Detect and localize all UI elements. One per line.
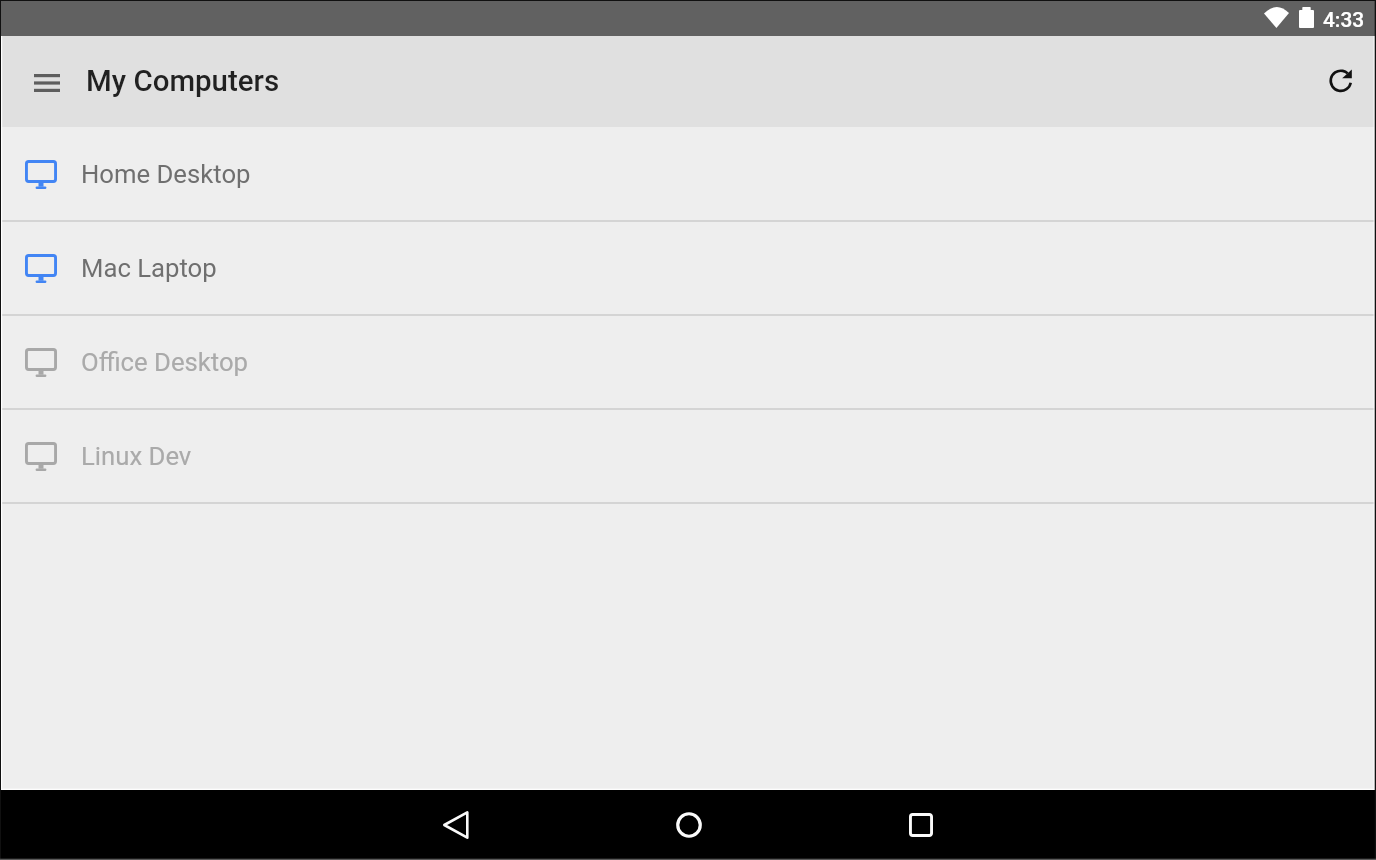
button[interactable]: Mac Laptop (0, 221, 1376, 315)
staticText: Linux Dev (81, 441, 192, 471)
button[interactable]: Recent apps (873, 790, 969, 860)
staticText: Home Desktop (81, 159, 251, 189)
button[interactable]: Office Desktop (0, 315, 1376, 409)
staticText: Office Desktop (81, 347, 249, 377)
staticText: My Computers (86, 64, 280, 99)
button[interactable]: Open navigation menu (21, 36, 73, 127)
button[interactable]: Home Desktop (0, 127, 1376, 221)
button[interactable]: Back (408, 790, 504, 860)
staticText: 4:33 (1323, 8, 1365, 32)
staticText: Mac Laptop (81, 253, 217, 283)
button[interactable]: Linux Dev (0, 409, 1376, 503)
button[interactable]: Refresh (1317, 36, 1365, 127)
button[interactable]: Home (641, 790, 737, 860)
